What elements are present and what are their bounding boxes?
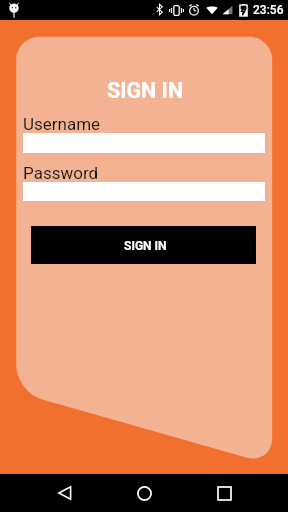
staticText: 23:56 [253,3,284,17]
button[interactable]: Back [46,474,84,512]
button[interactable]: SIGN IN [31,226,256,264]
staticText: Username [23,114,101,134]
staticText: Password [23,163,99,183]
staticText: SIGN IN [1,78,288,103]
staticText: SIGN IN [124,239,167,253]
button[interactable]: Recent apps [205,474,243,512]
button[interactable]: Home [125,474,163,512]
